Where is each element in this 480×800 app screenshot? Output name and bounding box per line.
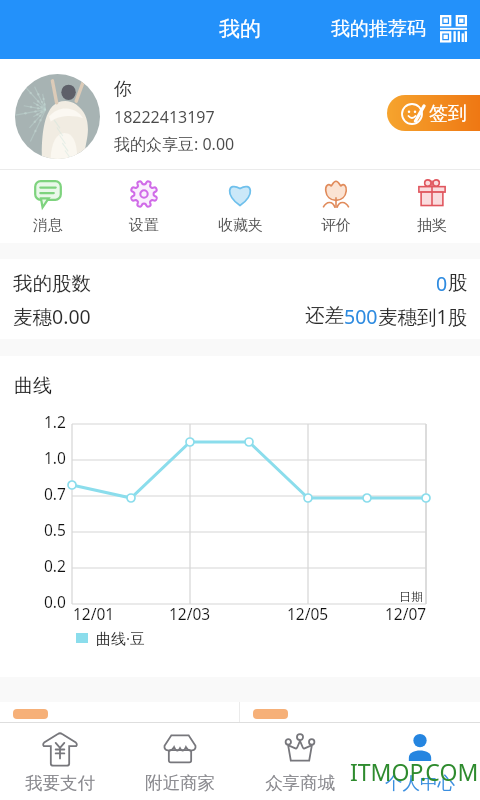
button[interactable]: 众享商城 — [240, 723, 360, 800]
staticText: 我要支付 — [25, 772, 95, 794]
staticText: 附近商家 — [145, 772, 215, 794]
button[interactable]: 签到 — [387, 95, 480, 131]
staticText: 我的众享豆: 0.00 — [114, 133, 235, 155]
staticText: 我的推荐码 — [331, 17, 426, 41]
button[interactable]: 消息 — [0, 170, 96, 243]
staticText: 1.2 — [44, 411, 66, 432]
staticText: 我的股数 — [13, 271, 91, 296]
staticText: 设置 — [129, 216, 159, 235]
staticText: 还差 — [305, 303, 344, 328]
staticText: 日期 — [399, 589, 423, 602]
button[interactable]: 个人中心 — [360, 723, 480, 800]
staticText: 曲线 — [14, 374, 52, 398]
staticText: 500 — [344, 303, 378, 330]
staticText: 0.2 — [44, 555, 66, 576]
staticText: 曲线·豆 — [96, 628, 146, 648]
staticText: 你 — [114, 78, 132, 101]
staticText: 收藏夹 — [218, 216, 263, 235]
staticText: 个人中心 — [385, 772, 455, 794]
button[interactable]: 我的推荐码 — [331, 15, 467, 42]
button[interactable] — [240, 702, 480, 722]
staticText: 18222413197 — [114, 106, 215, 128]
staticText: 12/05 — [287, 603, 329, 624]
staticText: 0.5 — [44, 519, 66, 540]
button[interactable]: 评价 — [288, 170, 384, 243]
staticText: 12/01 — [73, 603, 115, 624]
staticText: 我的 — [219, 16, 261, 42]
staticText: 消息 — [33, 216, 63, 235]
button[interactable] — [0, 702, 239, 722]
staticText: 麦穗0.00 — [13, 303, 91, 330]
button[interactable]: 我要支付 — [0, 723, 120, 800]
staticText: 0 — [436, 270, 448, 297]
staticText: 0.7 — [44, 483, 66, 504]
button[interactable]: 抽奖 — [384, 170, 480, 243]
staticText: 评价 — [321, 216, 351, 235]
button[interactable]: 收藏夹 — [192, 170, 288, 243]
staticText: 签到 — [429, 102, 467, 126]
staticText: 12/03 — [169, 603, 211, 624]
staticText: 1.0 — [44, 447, 66, 468]
staticText: 0.0 — [44, 591, 66, 612]
staticText: 抽奖 — [417, 216, 447, 235]
other: Scan QR code — [440, 15, 467, 42]
staticText: 麦穗到1股 — [378, 303, 468, 330]
button[interactable]: 附近商家 — [120, 723, 240, 800]
staticText: 众享商城 — [265, 772, 335, 794]
staticText: 12/07 — [385, 603, 427, 624]
staticText: 股 — [448, 270, 468, 295]
button[interactable]: 设置 — [96, 170, 192, 243]
staticText: ITMOP.COM — [350, 756, 479, 787]
